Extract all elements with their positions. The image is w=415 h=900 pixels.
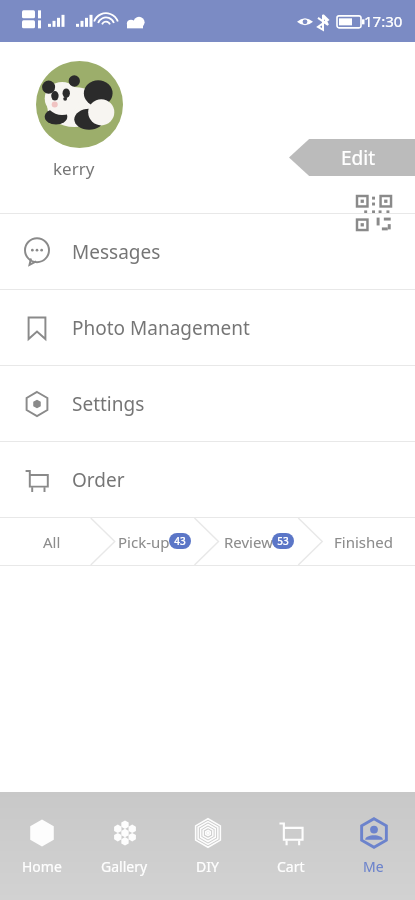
button[interactable]: DIY	[166, 792, 249, 900]
staticText: Photo Management	[72, 315, 250, 341]
staticText: Gallery	[101, 857, 148, 876]
staticText: Finished	[334, 532, 393, 552]
staticText: Review	[224, 532, 273, 552]
staticText: Me	[363, 857, 384, 876]
staticText: Edit	[341, 145, 376, 171]
button[interactable]: Finished	[311, 518, 415, 565]
button[interactable]: All	[0, 518, 103, 565]
staticText: Messages	[72, 239, 161, 265]
button[interactable]: Me	[332, 792, 415, 900]
button[interactable]: Photo Management	[0, 290, 415, 365]
staticText: All	[43, 532, 61, 552]
button[interactable]: Gallery	[83, 792, 166, 900]
button[interactable]: Cart	[249, 792, 332, 900]
staticText: Settings	[72, 391, 145, 417]
staticText: Order	[72, 467, 125, 493]
button[interactable]: Review	[207, 518, 311, 565]
staticText: DIY	[196, 857, 219, 876]
button[interactable]: Settings	[0, 366, 415, 441]
staticText: kerry	[53, 157, 95, 180]
button[interactable]: Messages	[0, 214, 415, 289]
staticText: 17:30	[364, 11, 403, 31]
button[interactable]: QR code	[355, 194, 395, 234]
staticText: Home	[22, 857, 62, 876]
staticText: 43	[174, 534, 186, 548]
button[interactable]: Order	[0, 442, 415, 517]
button[interactable]: Profile picture	[36, 61, 123, 148]
button[interactable]: Pick-up	[103, 518, 207, 565]
button[interactable]: Edit	[289, 139, 415, 176]
staticText: 53	[277, 534, 289, 548]
staticText: Pick-up	[118, 532, 170, 552]
staticText: Cart	[277, 857, 305, 876]
button[interactable]: Home	[0, 792, 83, 900]
